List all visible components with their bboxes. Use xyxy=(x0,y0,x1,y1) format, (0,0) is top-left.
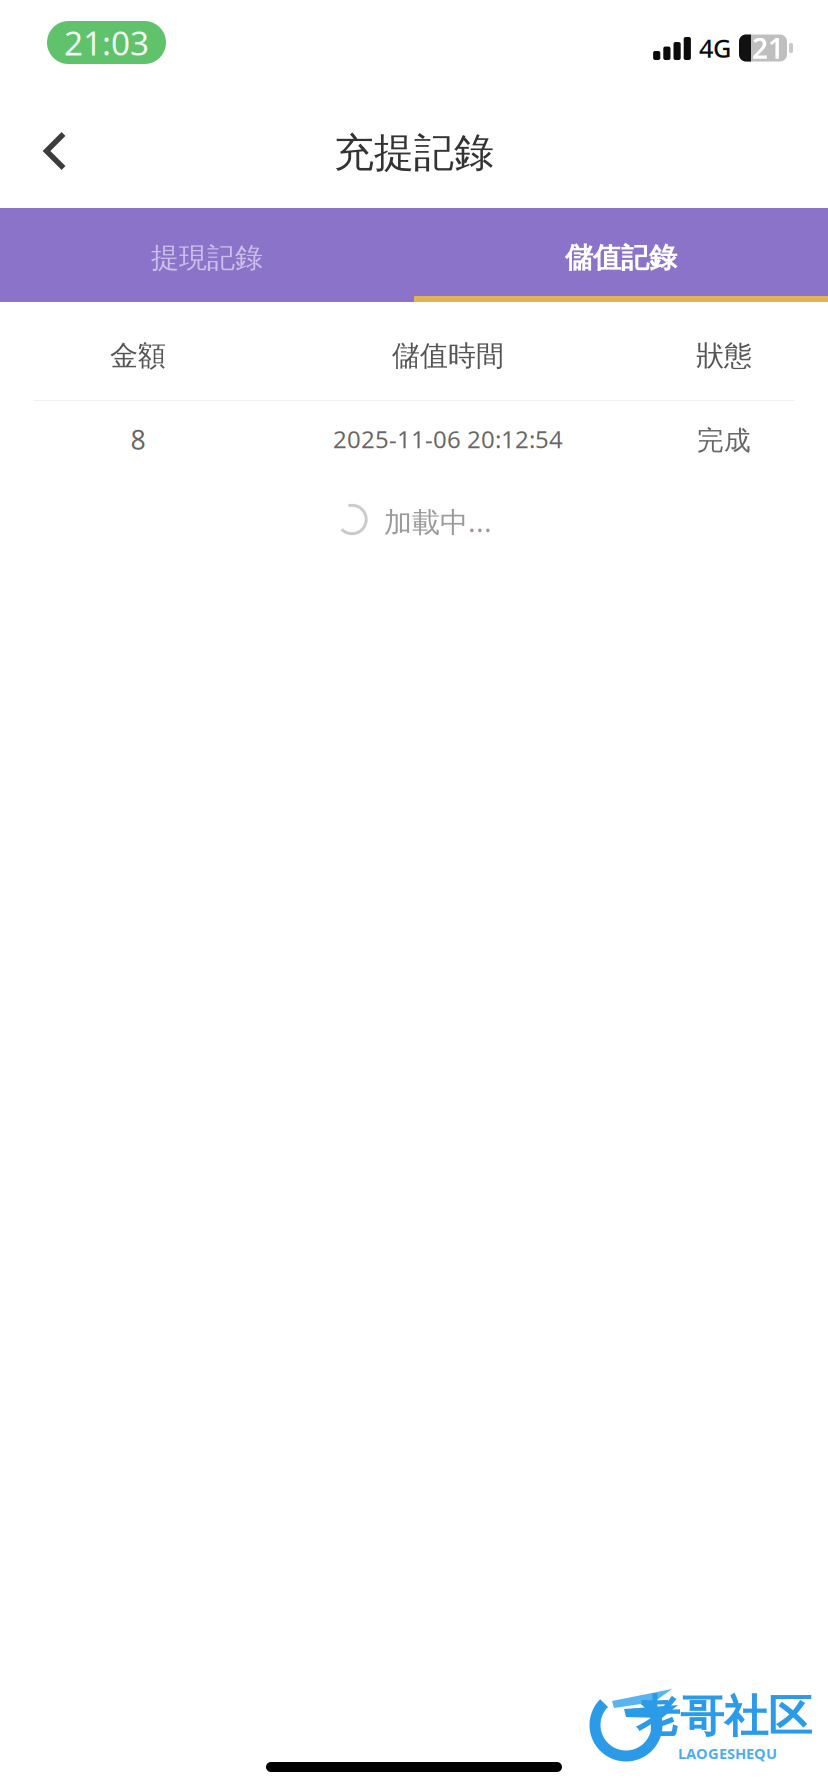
staticText: 提現記錄 xyxy=(151,241,263,275)
button[interactable]: Back xyxy=(0,96,105,196)
staticText: 2025-11-06 20:12:54 xyxy=(333,423,563,455)
staticText: 4G xyxy=(699,31,731,65)
staticText: 21:03 xyxy=(64,20,149,65)
staticText: 金額 xyxy=(110,339,166,373)
staticText: 完成 xyxy=(697,424,751,457)
button[interactable]: 提現記錄 xyxy=(0,208,414,302)
staticText: 儲值記錄 xyxy=(565,241,677,275)
staticText: 儲值時間 xyxy=(392,339,504,373)
staticText: 8 xyxy=(130,422,145,457)
staticText: 21 xyxy=(752,29,784,67)
staticText: 加載中... xyxy=(384,503,492,540)
staticText: LAOGESHEQU xyxy=(678,1743,777,1763)
staticText: 老哥社区 xyxy=(636,1689,812,1743)
staticText: 狀態 xyxy=(696,339,752,373)
staticText: 充提記錄 xyxy=(334,128,494,177)
button[interactable]: 8 xyxy=(0,401,828,477)
button[interactable]: 儲值記錄 xyxy=(414,208,828,302)
